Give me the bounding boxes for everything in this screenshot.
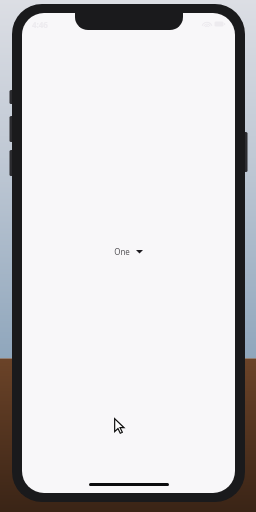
- other: Expand dropdown: [136, 249, 143, 254]
- staticText: 4:46: [32, 19, 48, 30]
- staticText: One: [114, 246, 130, 257]
- button[interactable]: One: [110, 243, 147, 260]
